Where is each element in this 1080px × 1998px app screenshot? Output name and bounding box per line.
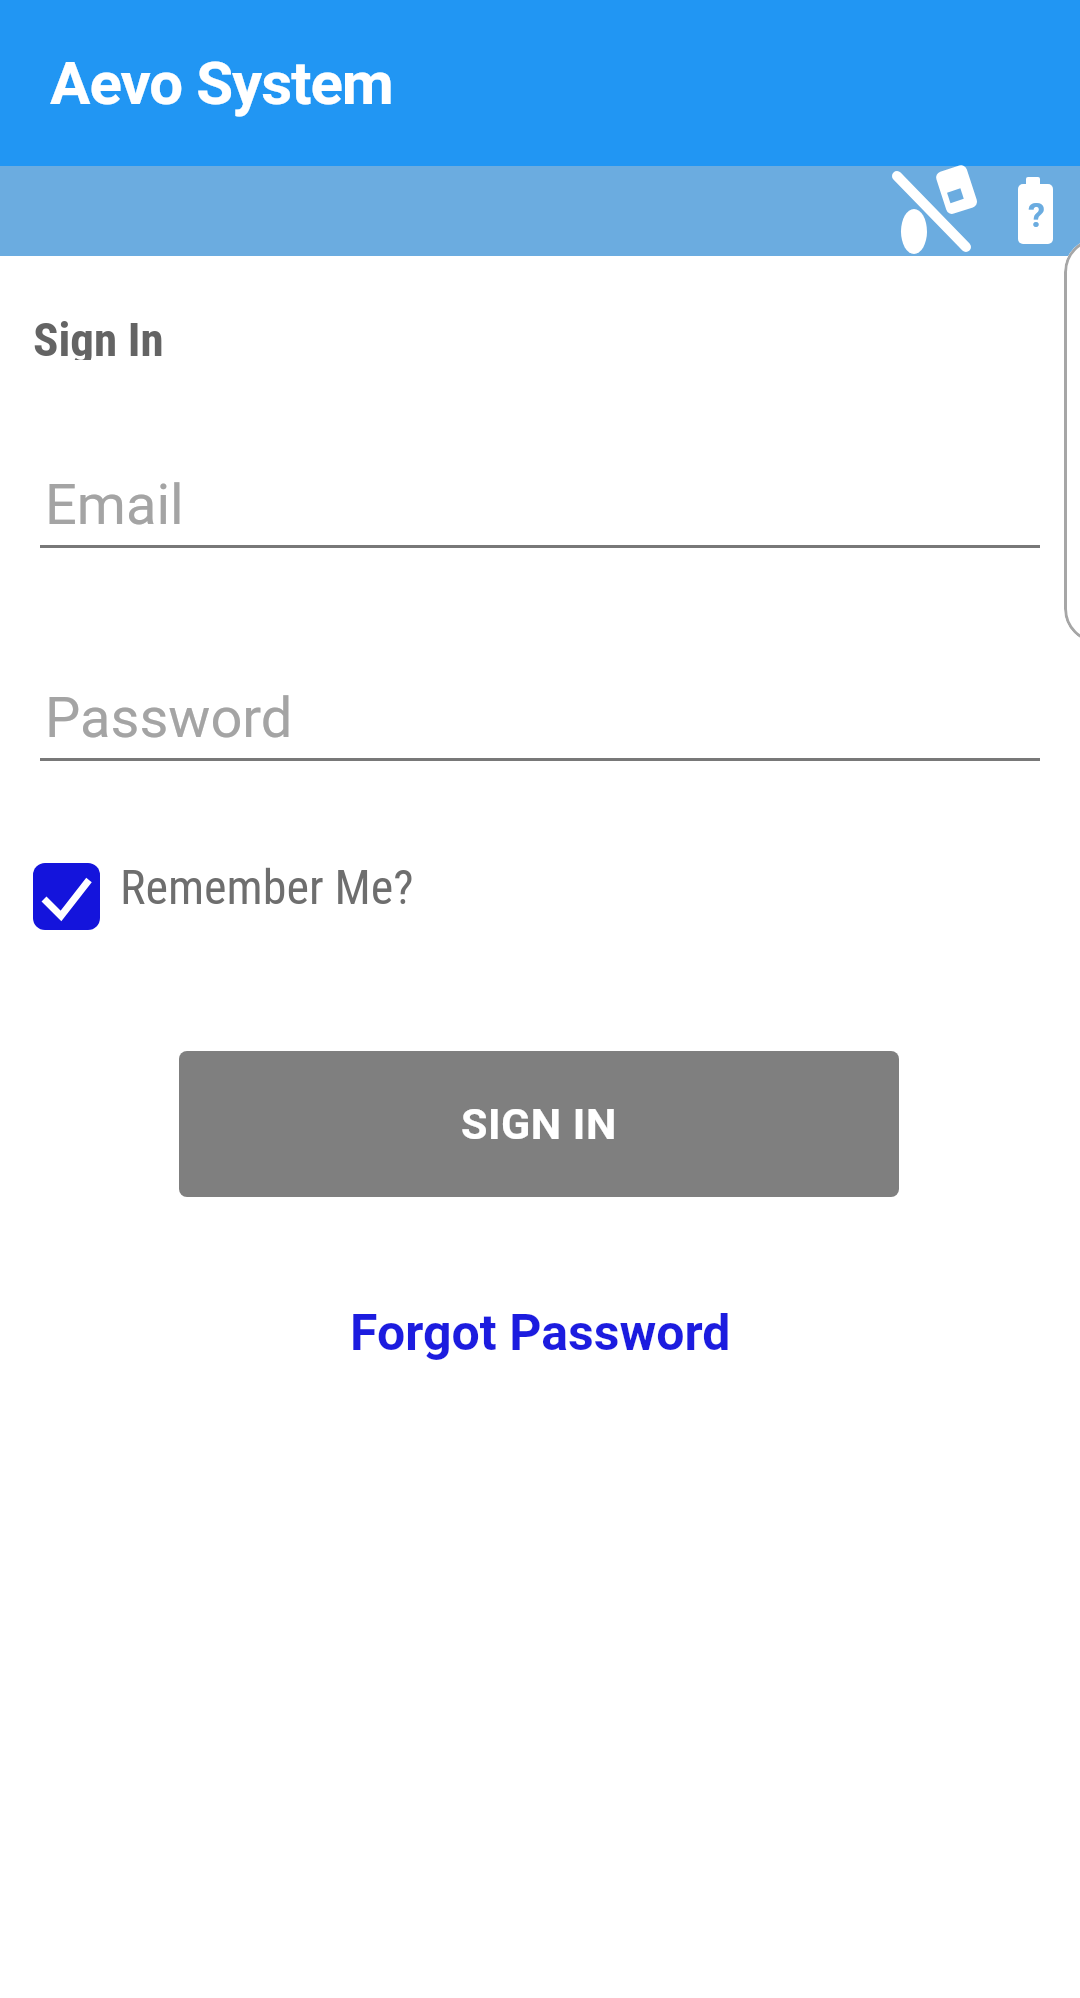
button[interactable]: SIGN IN [179,1051,899,1197]
staticText: SIGN IN [461,1099,617,1149]
staticText: Aevo System [50,48,393,118]
staticText: Remember Me? [120,859,414,915]
staticText: Sign In [33,312,164,360]
button[interactable]: Password [40,675,1040,765]
button[interactable]: Email [40,462,1040,552]
button[interactable]: Remember Me? [33,856,553,938]
staticText: ? [1028,195,1045,235]
button[interactable]: Forgot Password [350,1304,731,1363]
staticText: Email [45,472,184,538]
staticText: Password [45,685,293,751]
